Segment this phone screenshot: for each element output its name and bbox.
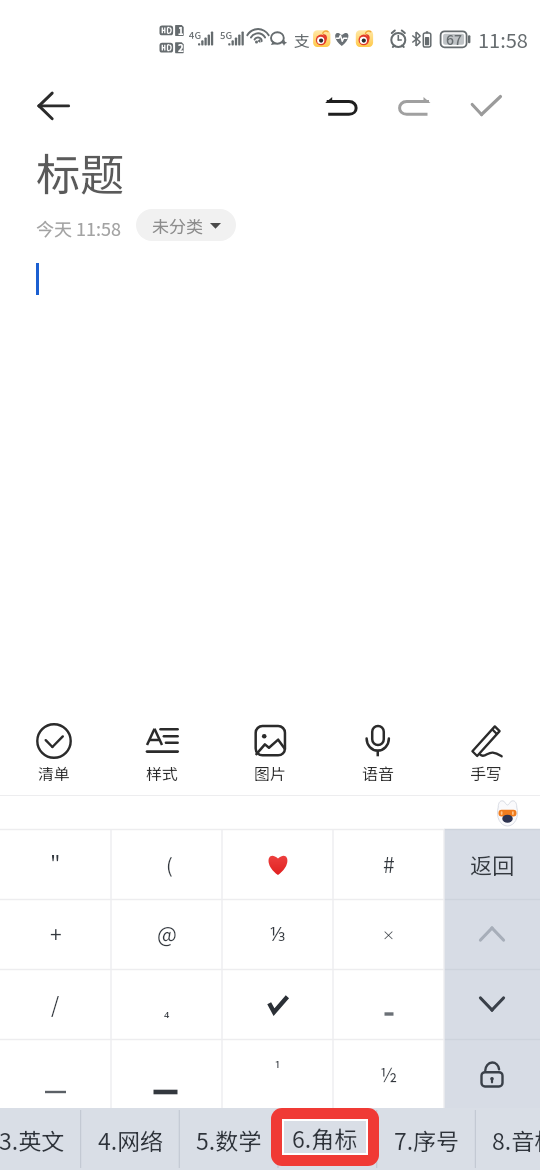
button[interactable]: Key ❤ <box>222 829 333 899</box>
staticText: 返回 <box>470 848 515 880</box>
staticText: 今天 11:58 <box>36 215 121 241</box>
button[interactable]: Key ⅓ <box>222 899 333 969</box>
button[interactable]: 4.网络 <box>81 1108 180 1170</box>
button[interactable]: Key ﹣ <box>333 969 444 1039</box>
button[interactable]: 样式 <box>116 716 208 784</box>
staticText: 支 <box>294 28 311 51</box>
button[interactable]: Key / <box>0 969 111 1039</box>
staticText: 2 <box>178 41 184 55</box>
staticText: 4G <box>189 28 202 42</box>
button[interactable]: Next page <box>444 969 540 1039</box>
button[interactable]: Key ( <box>111 829 222 899</box>
button[interactable]: Key ✔ <box>222 969 333 1039</box>
button[interactable]: 清单 <box>8 716 100 784</box>
staticText: 6.角标 <box>292 1121 358 1153</box>
button[interactable]: 7.序号 <box>377 1108 476 1170</box>
button[interactable]: Emoji <box>495 799 520 826</box>
staticText: × <box>382 925 396 944</box>
staticText: ½ <box>380 1060 398 1088</box>
staticText: 8.音标 <box>492 1123 540 1156</box>
staticText: ¹ <box>274 1056 281 1081</box>
button[interactable]: 3.英文 <box>0 1108 81 1170</box>
staticText: 6.角标 <box>295 1123 361 1156</box>
button[interactable]: Lock <box>444 1039 540 1109</box>
staticText: ⅓ <box>270 921 286 947</box>
button[interactable]: Key × <box>333 899 444 969</box>
staticText: 样式 <box>146 761 179 784</box>
staticText: @ <box>157 919 177 949</box>
staticText: 67 <box>446 29 462 49</box>
button[interactable]: Key # <box>333 829 444 899</box>
staticText: 5G <box>220 28 233 42</box>
button[interactable]: Key ₄ <box>111 969 222 1039</box>
staticText: ( <box>166 850 173 879</box>
button[interactable]: Previous page <box>444 899 540 969</box>
staticText: 清单 <box>38 761 71 784</box>
button[interactable]: 图片 <box>224 716 316 784</box>
staticText: + <box>50 919 62 949</box>
button[interactable]: Return <box>444 829 540 899</box>
button[interactable]: Redo <box>387 80 441 134</box>
button[interactable]: Back <box>18 64 72 118</box>
button[interactable]: Key ━ <box>111 1039 222 1109</box>
staticText: 11:58 <box>478 25 528 54</box>
button[interactable]: 语音 <box>332 716 424 784</box>
button[interactable]: 5.数学 <box>179 1108 278 1170</box>
staticText: 图片 <box>254 761 287 784</box>
staticText: 1 <box>178 24 184 38</box>
button[interactable]: Key @ <box>111 899 222 969</box>
button[interactable]: Key + <box>0 899 111 969</box>
button[interactable]: Undo <box>315 80 369 134</box>
staticText: 语音 <box>362 761 395 784</box>
button[interactable]: Key ½ <box>333 1039 444 1109</box>
staticText: 手写 <box>470 761 503 784</box>
button[interactable]: Key " <box>0 829 111 899</box>
staticText: 4.网络 <box>98 1123 164 1156</box>
button[interactable]: 6.角标 <box>278 1108 377 1170</box>
button[interactable]: Key ¹ <box>222 1039 333 1109</box>
staticText: 未分类 <box>152 213 203 238</box>
staticText: 7.序号 <box>394 1123 460 1156</box>
button[interactable]: 6.角标 <box>284 1121 366 1153</box>
staticText: " <box>50 846 61 878</box>
button[interactable]: Key — <box>0 1039 111 1109</box>
staticText: 3.英文 <box>0 1123 65 1156</box>
staticText: # <box>383 849 395 879</box>
button[interactable]: 手写 <box>440 716 532 784</box>
staticText: 标题 <box>36 140 124 204</box>
button[interactable]: 8.音标 <box>475 1108 540 1170</box>
button[interactable]: Done <box>459 80 513 134</box>
button[interactable]: 未分类 <box>136 209 236 241</box>
staticText: / <box>51 989 60 1019</box>
staticText: 5.数学 <box>196 1123 262 1156</box>
staticText: ₄ <box>164 1000 170 1020</box>
